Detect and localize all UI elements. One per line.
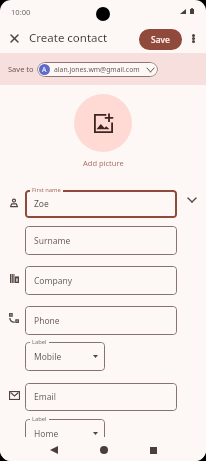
staticText: Surname <box>34 235 71 247</box>
staticText: Label <box>32 415 47 423</box>
staticText: Save <box>151 34 170 46</box>
button[interactable]: Company <box>25 266 177 295</box>
staticText: Home <box>34 428 59 440</box>
staticText: Zoe <box>34 198 49 210</box>
staticText: Email <box>34 391 56 403</box>
button[interactable]: Close <box>5 29 23 47</box>
button[interactable]: Surname <box>25 226 177 255</box>
staticText: First name <box>32 186 61 194</box>
staticText: A <box>42 65 47 74</box>
staticText: Mobile <box>34 351 62 363</box>
button[interactable]: Zoe <box>25 190 177 218</box>
button[interactable]: A <box>37 62 158 77</box>
button[interactable]: Recents <box>143 440 163 460</box>
staticText: Save to <box>8 64 34 74</box>
staticText: Create contact <box>29 30 108 46</box>
button[interactable]: More options <box>184 29 202 47</box>
button[interactable]: Home <box>94 440 114 460</box>
button[interactable]: Back <box>44 440 64 460</box>
staticText: 10:00 <box>11 7 31 17</box>
staticText: alan.jones.wm@gmail.com <box>54 65 140 74</box>
staticText: Company <box>34 275 73 287</box>
button[interactable]: Add picture <box>74 94 132 152</box>
button[interactable]: Email <box>25 383 177 411</box>
button[interactable]: Save <box>139 29 182 50</box>
button[interactable]: Phone <box>25 306 177 335</box>
staticText: Add picture <box>83 158 124 168</box>
staticText: Label <box>32 338 47 346</box>
button[interactable]: Mobile <box>25 342 105 371</box>
staticText: Phone <box>34 315 60 327</box>
button[interactable]: Home <box>25 419 105 448</box>
button[interactable]: Expand name fields <box>186 194 198 206</box>
